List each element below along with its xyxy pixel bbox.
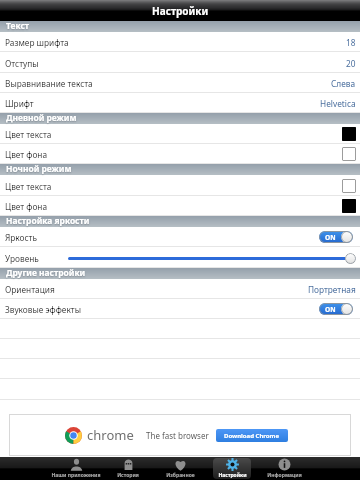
staticText: Выравнивание текста: [5, 78, 93, 89]
staticText: Текст: [6, 20, 30, 31]
staticText: ON: [325, 233, 336, 242]
button[interactable]: Избранное: [154, 457, 206, 480]
staticText: Уровень: [5, 253, 39, 264]
staticText: Ночной режим: [6, 163, 72, 174]
button[interactable]: Brightness level: [68, 251, 356, 265]
staticText: Настройки: [152, 4, 209, 18]
button[interactable]: Отступы: [0, 53, 360, 73]
staticText: Цвет фона: [5, 149, 48, 160]
button[interactable]: Choose colour: [342, 179, 356, 193]
button[interactable]: Toggle on: [319, 303, 353, 315]
staticText: Отступы: [5, 58, 39, 69]
button[interactable]: Выравнивание текста: [0, 73, 360, 93]
staticText: ON: [325, 305, 336, 314]
button[interactable]: Toggle on: [319, 231, 353, 243]
staticText: 20: [346, 58, 356, 69]
button[interactable]: Цвет текста: [0, 176, 360, 196]
staticText: История: [117, 472, 139, 479]
button[interactable]: Шрифт: [0, 93, 360, 113]
button[interactable]: Уровень: [0, 248, 360, 268]
button[interactable]: Информация: [258, 457, 310, 480]
staticText: Настройка яркости: [6, 215, 90, 226]
staticText: Дневной режим: [6, 112, 77, 123]
button[interactable]: [0, 359, 360, 379]
button[interactable]: Размер шрифта: [0, 32, 360, 52]
staticText: Настройки: [218, 472, 247, 479]
button[interactable]: Choose colour: [342, 127, 356, 141]
staticText: Размер шрифта: [5, 37, 69, 48]
button[interactable]: Цвет текста: [0, 124, 360, 144]
staticText: Цвет текста: [5, 181, 52, 192]
staticText: 18: [346, 37, 356, 48]
button[interactable]: Download Chrome: [216, 429, 288, 442]
staticText: Шрифт: [5, 98, 34, 109]
staticText: Звуковые эффекты: [5, 304, 81, 315]
staticText: Цвет фона: [5, 201, 48, 212]
button[interactable]: [0, 319, 360, 339]
staticText: Ориентация: [5, 284, 55, 295]
staticText: Другие настройки: [6, 267, 86, 278]
staticText: Слева: [331, 78, 356, 89]
button[interactable]: Choose colour: [342, 147, 356, 161]
staticText: Наши приложения: [51, 472, 101, 479]
button[interactable]: chrome: [9, 414, 351, 456]
staticText: Цвет текста: [5, 129, 52, 140]
button[interactable]: Яркость: [0, 227, 360, 247]
button[interactable]: Цвет фона: [0, 144, 360, 164]
staticText: Портретная: [308, 284, 356, 295]
staticText: Helvetica: [320, 98, 356, 109]
button[interactable]: Настройки: [206, 457, 258, 480]
button[interactable]: Choose colour: [342, 199, 356, 213]
button[interactable]: История: [102, 457, 154, 480]
button[interactable]: Звуковые эффекты: [0, 299, 360, 319]
staticText: Информация: [267, 472, 302, 479]
staticText: The fast browser: [146, 430, 209, 441]
button[interactable]: Цвет фона: [0, 196, 360, 216]
button[interactable]: Наши приложения: [50, 457, 102, 480]
staticText: Избранное: [166, 472, 195, 479]
staticText: Download Chrome: [224, 432, 280, 440]
button[interactable]: [0, 339, 360, 359]
button[interactable]: [0, 380, 360, 400]
staticText: Яркость: [5, 232, 37, 243]
staticText: chrome: [87, 426, 134, 444]
button[interactable]: Ориентация: [0, 279, 360, 299]
